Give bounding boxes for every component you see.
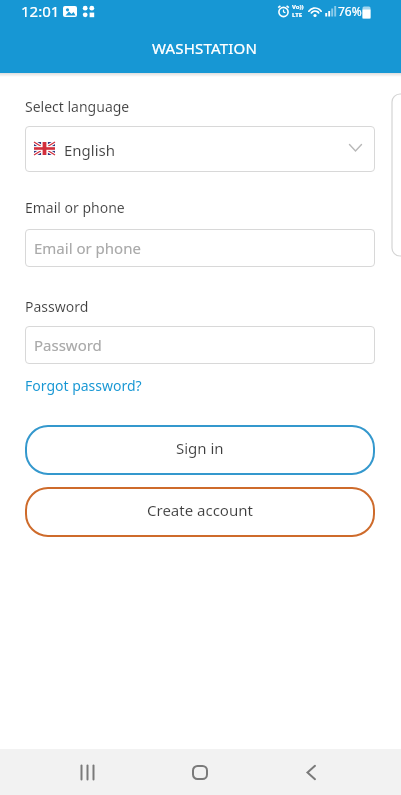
staticText: 76% [338, 3, 362, 19]
staticText: Create account [147, 500, 253, 520]
staticText: WASHSTATION [152, 38, 258, 58]
staticText: English [64, 140, 116, 160]
staticText: Vo)) [292, 3, 304, 11]
staticText: LTE [292, 11, 303, 19]
staticText: Email or phone [34, 238, 141, 258]
staticText: Password [34, 335, 102, 355]
staticText: Email or phone [25, 198, 125, 217]
staticText: 12:01 [21, 1, 60, 21]
staticText: Password [25, 297, 89, 316]
staticText: Forgot password? [25, 376, 142, 395]
staticText: Sign in [176, 438, 224, 458]
staticText: Select language [25, 97, 130, 116]
